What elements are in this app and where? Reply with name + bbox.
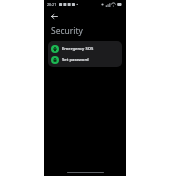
staticText: Set password [62,57,89,63]
staticText: Security [51,25,83,37]
button[interactable]: Back [49,11,60,22]
button[interactable]: Set password [48,54,122,65]
staticText: 20:21 [47,2,57,7]
button[interactable]: Emergency SOS [48,43,122,54]
staticText: Emergency SOS [62,46,94,52]
